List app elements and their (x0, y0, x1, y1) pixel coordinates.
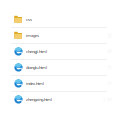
staticText: 2 M (103, 96, 112, 103)
button[interactable]: css (0, 12, 128, 28)
staticText: images (26, 33, 39, 38)
staticText: dianglu.html (26, 65, 47, 70)
button[interactable]: zhengxing.html (0, 92, 128, 108)
button[interactable]: index.html (0, 76, 128, 92)
button[interactable]: dianglu.html (0, 60, 128, 76)
button[interactable]: chengji.html (0, 44, 128, 60)
staticText: index.html (26, 81, 44, 86)
button[interactable]: images (0, 28, 128, 44)
staticText: 文 (107, 32, 112, 39)
staticText: css (26, 17, 32, 22)
staticText: chengji.html (26, 49, 47, 54)
staticText: zhengxing.html (26, 97, 52, 102)
